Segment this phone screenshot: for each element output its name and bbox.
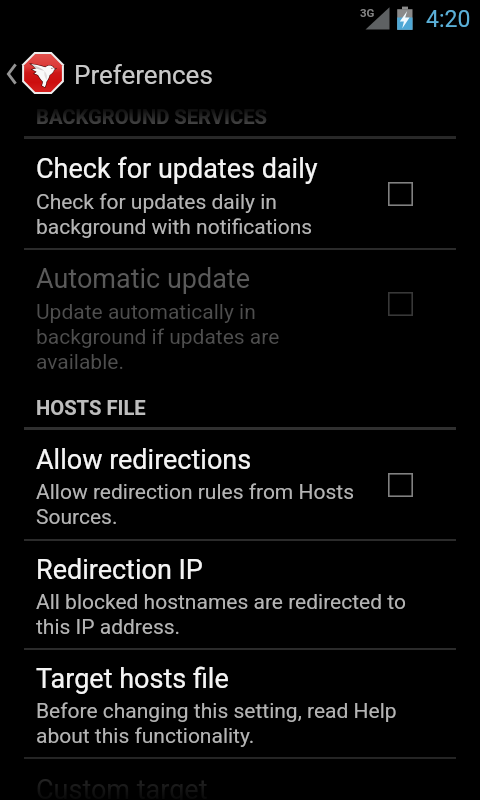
button[interactable] xyxy=(0,760,480,800)
button[interactable] xyxy=(0,540,480,648)
staticText: Custom target xyxy=(36,774,208,800)
staticText: BACKGROUND SERVICES xyxy=(36,105,267,129)
staticText: Automatic update xyxy=(36,263,251,295)
other: Navigate up xyxy=(7,63,17,85)
button[interactable]: Toggle xyxy=(360,164,440,224)
button[interactable]: Toggle xyxy=(360,274,440,334)
button[interactable]: Navigate up xyxy=(0,0,480,96)
staticText: Before changing this setting, read Help … xyxy=(36,699,397,749)
staticText: Check for updates daily in background wi… xyxy=(36,190,313,240)
staticText: Preferences xyxy=(74,60,213,90)
staticText: Check for updates daily xyxy=(36,153,318,185)
staticText: All blocked hostnames are redirected to … xyxy=(36,590,406,640)
staticText: Allow redirection rules from Hosts Sourc… xyxy=(36,480,354,530)
staticText: Redirection IP xyxy=(36,554,203,586)
button[interactable]: Toggle xyxy=(360,455,440,515)
staticText: Update automatically in background if up… xyxy=(36,300,280,375)
button[interactable] xyxy=(0,96,480,248)
staticText: 3G xyxy=(360,6,375,19)
button[interactable] xyxy=(0,430,480,539)
staticText: Target hosts file xyxy=(36,663,229,695)
staticText: Allow redirections xyxy=(36,444,252,476)
button[interactable] xyxy=(0,249,480,386)
button[interactable] xyxy=(0,649,480,759)
staticText: HOSTS FILE xyxy=(36,396,146,420)
staticText: 4:20 xyxy=(426,6,471,33)
